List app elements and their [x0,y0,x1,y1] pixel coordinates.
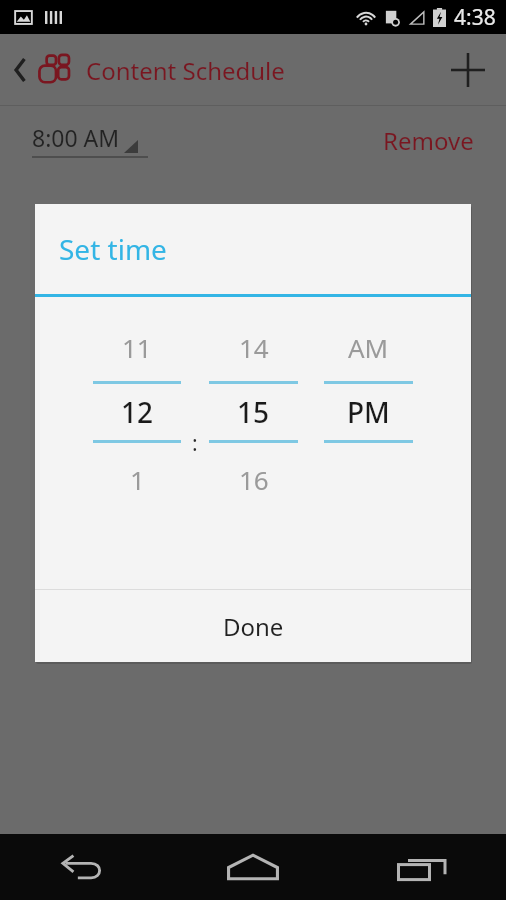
button[interactable]: 8:00 AM [32,122,148,158]
staticText: : [192,429,198,458]
button[interactable]: 14 [207,297,300,589]
button[interactable]: 11 [91,297,183,589]
button[interactable]: Home [168,834,337,900]
button[interactable]: AM [322,297,415,589]
staticText: 12 [121,393,154,431]
button[interactable]: Add [442,44,494,96]
staticText: Done [223,610,284,643]
staticText: 4:38 [454,3,496,32]
staticText: Content Schedule [86,54,285,87]
staticText: 16 [239,462,269,497]
button[interactable]: Remove [383,124,474,157]
staticText: AM [348,330,389,365]
button[interactable]: Done [35,590,471,662]
button[interactable]: Back [6,45,34,95]
staticText: PM [347,393,390,431]
button[interactable]: Back [0,834,168,900]
staticText: 11 [122,330,152,365]
staticText: Remove [383,124,474,157]
staticText: 1 [130,462,145,497]
staticText: 14 [239,330,269,365]
staticText: 8:00 AM [32,122,120,153]
staticText: 15 [237,393,270,431]
button[interactable]: Recent apps [337,834,506,900]
staticText: Set time [59,230,167,268]
